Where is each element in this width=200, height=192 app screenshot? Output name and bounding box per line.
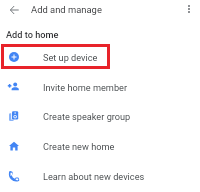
staticText: Create new home [43,141,115,152]
staticText: Add to home [6,29,59,40]
button[interactable]: Invite home member [0,72,200,101]
button[interactable]: Create new home [0,131,200,160]
button[interactable]: Back [5,1,23,19]
staticText: Set up device [43,52,98,63]
button[interactable]: Set up device [0,42,200,71]
staticText: Add and manage [31,4,102,15]
staticText: Learn about new devices [43,171,145,182]
staticText: Invite home member [43,82,128,93]
button[interactable]: More options [181,1,197,17]
button[interactable]: Learn about new devices [0,161,200,190]
staticText: Create speaker group [43,111,131,122]
button[interactable]: Create speaker group [0,101,200,130]
